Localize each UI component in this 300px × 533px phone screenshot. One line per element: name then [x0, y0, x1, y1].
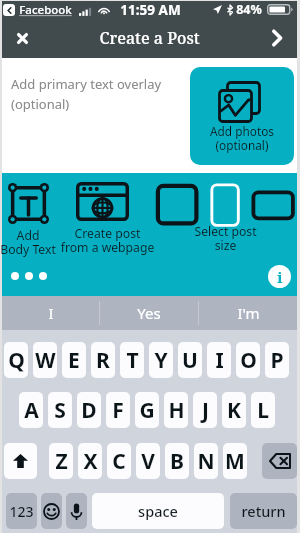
staticText: D: [81, 396, 97, 425]
staticText: Select post size: [150, 223, 300, 254]
button[interactable]: Shift: [4, 443, 37, 479]
button[interactable]: I: [2, 296, 99, 330]
staticText: Q: [8, 346, 25, 375]
button[interactable]: V: [136, 443, 160, 479]
button[interactable]: Next: [257, 18, 297, 58]
button[interactable]: Backspace: [262, 443, 297, 479]
button[interactable]: N: [194, 443, 218, 479]
button[interactable]: A: [19, 392, 43, 428]
staticText: W: [35, 346, 56, 375]
button[interactable]: G: [135, 392, 159, 428]
staticText: K: [227, 396, 241, 425]
button[interactable]: More options: [11, 272, 47, 280]
staticText: B: [170, 447, 184, 476]
staticText: 84%: [236, 1, 262, 18]
button[interactable]: W: [33, 342, 57, 378]
staticText: P: [270, 346, 284, 375]
staticText: N: [197, 447, 215, 476]
staticText: Create post from a webpage: [58, 225, 157, 256]
staticText: Add photos (optional): [190, 123, 294, 154]
staticText: X: [83, 447, 98, 476]
button[interactable]: Y: [149, 342, 173, 378]
staticText: M: [225, 447, 245, 476]
button[interactable]: 123: [6, 493, 37, 529]
button[interactable]: C: [107, 443, 131, 479]
button[interactable]: J: [193, 392, 217, 428]
button[interactable]: I: [207, 342, 231, 378]
staticText: Z: [55, 447, 68, 476]
staticText: L: [257, 396, 269, 425]
staticText: G: [139, 396, 155, 425]
button[interactable]: S: [48, 392, 72, 428]
button[interactable]: P: [265, 342, 289, 378]
staticText: S: [54, 396, 66, 425]
button[interactable]: Z: [49, 443, 73, 479]
staticText: A: [24, 396, 39, 425]
button[interactable]: E: [62, 342, 86, 378]
button[interactable]: Add Body Text: [0, 183, 56, 258]
staticText: space: [138, 501, 178, 521]
button[interactable]: space: [92, 493, 224, 529]
button[interactable]: U: [178, 342, 202, 378]
button[interactable]: Information: [268, 265, 291, 288]
staticText: O: [240, 346, 257, 375]
button[interactable]: X: [78, 443, 102, 479]
button[interactable]: K: [222, 392, 246, 428]
button[interactable]: Emoji: [41, 493, 62, 529]
staticText: i: [277, 267, 283, 287]
staticText: I: [48, 303, 54, 323]
button[interactable]: return: [230, 493, 297, 529]
staticText: 11:59 AM: [120, 1, 181, 18]
button[interactable]: D: [77, 392, 101, 428]
staticText: F: [112, 396, 124, 425]
staticText: return: [241, 501, 286, 521]
staticText: Add Body Text: [0, 227, 56, 258]
staticText: R: [96, 346, 110, 375]
button[interactable]: [76, 182, 129, 221]
button[interactable]: Q: [4, 342, 28, 378]
button[interactable]: Close: [2, 18, 42, 58]
staticText: Add primary text overlay (optional): [11, 75, 183, 113]
button[interactable]: Landscape post size: [251, 190, 296, 220]
staticText: H: [168, 396, 185, 425]
staticText: 123: [9, 502, 34, 521]
button[interactable]: F: [106, 392, 130, 428]
button[interactable]: L: [251, 392, 275, 428]
button[interactable]: R: [91, 342, 115, 378]
button[interactable]: B: [165, 443, 189, 479]
staticText: V: [141, 447, 155, 476]
button[interactable]: Back: [3, 4, 15, 16]
staticText: E: [68, 346, 80, 375]
button[interactable]: O: [236, 342, 260, 378]
button[interactable]: T: [120, 342, 144, 378]
button[interactable]: H: [164, 392, 188, 428]
staticText: I: [215, 346, 224, 375]
button[interactable]: Yes: [100, 296, 198, 330]
staticText: Y: [154, 346, 168, 375]
button[interactable]: M: [223, 443, 247, 479]
button[interactable]: Add photos (optional): [190, 67, 294, 165]
button[interactable]: Portrait post size: [209, 182, 239, 226]
staticText: Yes: [137, 303, 161, 323]
staticText: J: [202, 396, 209, 425]
staticText: T: [126, 346, 139, 375]
staticText: U: [182, 346, 198, 375]
staticText: I'm: [237, 303, 260, 323]
button[interactable]: I'm: [199, 296, 297, 330]
staticText: Facebook: [19, 2, 72, 18]
staticText: C: [112, 447, 126, 476]
staticText: Create a Post: [42, 27, 257, 49]
button[interactable]: Square post size: [155, 183, 198, 225]
button[interactable]: Dictation: [66, 493, 87, 529]
